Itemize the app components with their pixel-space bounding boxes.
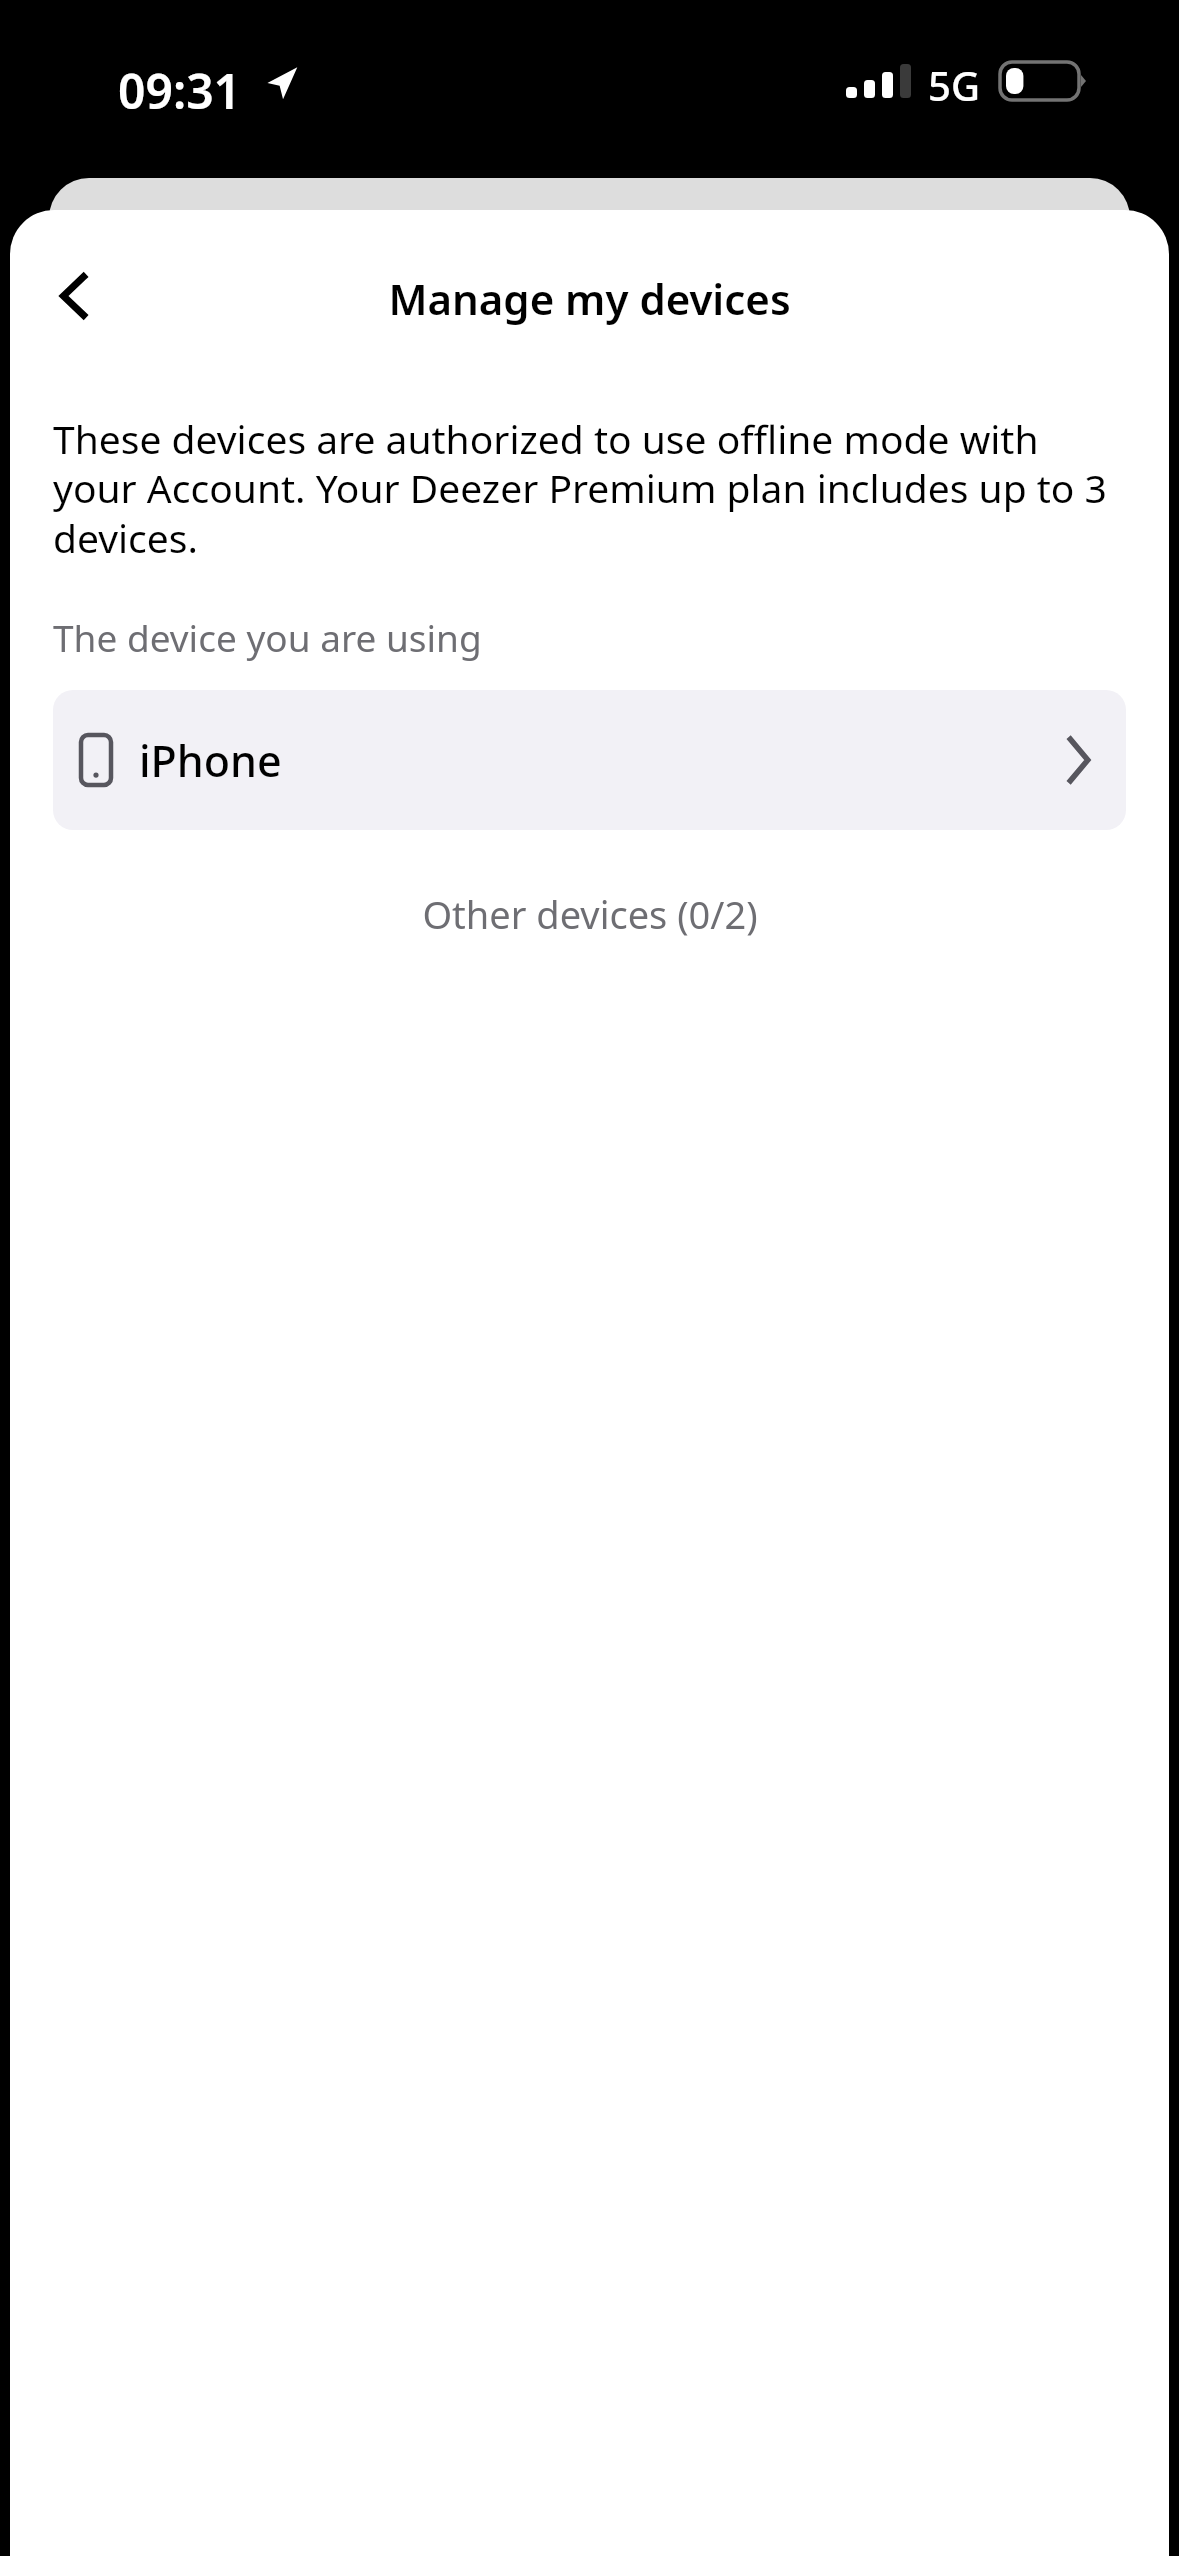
staticText: Manage my devices — [388, 270, 791, 327]
staticText: Other devices (0/2) — [422, 888, 758, 940]
button[interactable]: Back — [20, 242, 128, 350]
other: Battery — [1000, 62, 1086, 100]
button[interactable]: iPhone — [53, 690, 1126, 830]
staticText: The device you are using — [53, 612, 482, 662]
staticText: These devices are authorized to use offl… — [53, 412, 1126, 565]
staticText: 09:31 — [118, 58, 242, 123]
staticText: iPhone — [139, 731, 282, 790]
staticText: 5G — [928, 58, 980, 112]
